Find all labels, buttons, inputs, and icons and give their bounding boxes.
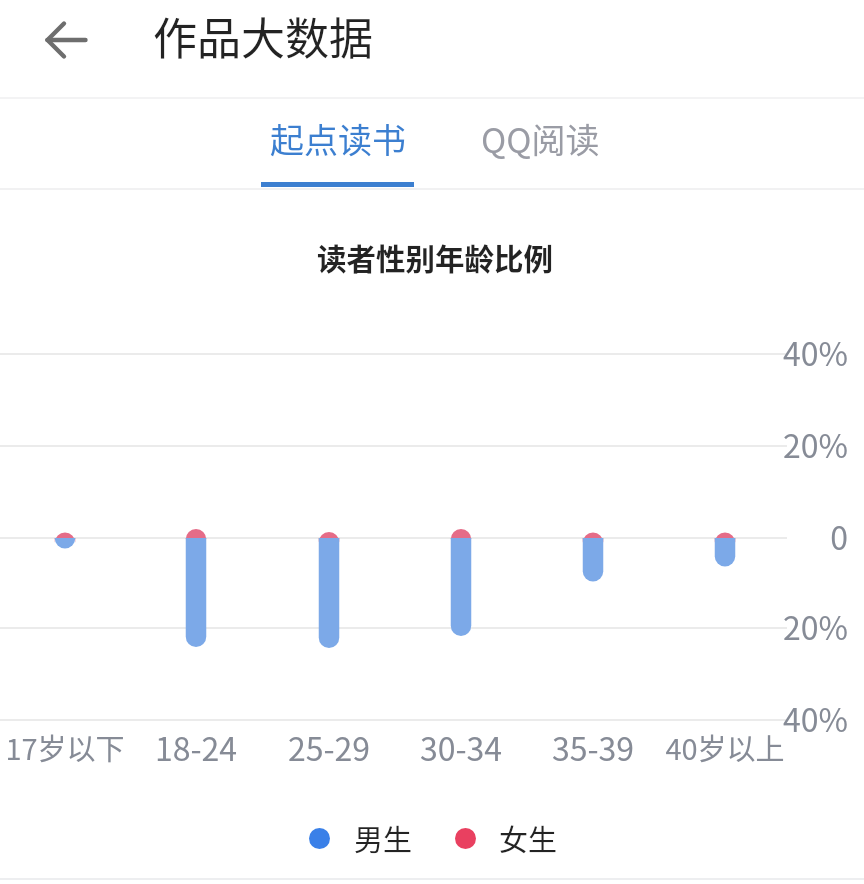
staticText: 40% <box>770 695 848 741</box>
staticText: 17岁以下 <box>0 726 165 768</box>
button[interactable]: 女生 <box>455 817 558 859</box>
staticText: 读者性别年龄比例 <box>3 236 864 279</box>
staticText: 40% <box>770 329 848 375</box>
staticText: 作品大数据 <box>153 4 373 68</box>
staticText: 男生 <box>354 817 413 859</box>
staticText: 0 <box>770 513 848 559</box>
button[interactable]: QQ阅读 <box>470 100 610 188</box>
staticText: 20% <box>770 421 848 467</box>
staticText: 35-39 <box>493 724 693 770</box>
staticText: 40岁以上 <box>625 726 825 768</box>
staticText: 女生 <box>499 817 558 859</box>
button[interactable]: 男生 <box>309 817 413 859</box>
staticText: 18-24 <box>96 724 296 770</box>
button[interactable]: 返回 <box>41 15 91 65</box>
staticText: 起点读书 <box>270 114 406 163</box>
staticText: QQ阅读 <box>481 114 600 163</box>
staticText: 20% <box>770 603 848 649</box>
staticText: 30-34 <box>361 724 561 770</box>
button[interactable]: 起点读书 <box>250 100 425 188</box>
staticText: 25-29 <box>229 724 429 770</box>
